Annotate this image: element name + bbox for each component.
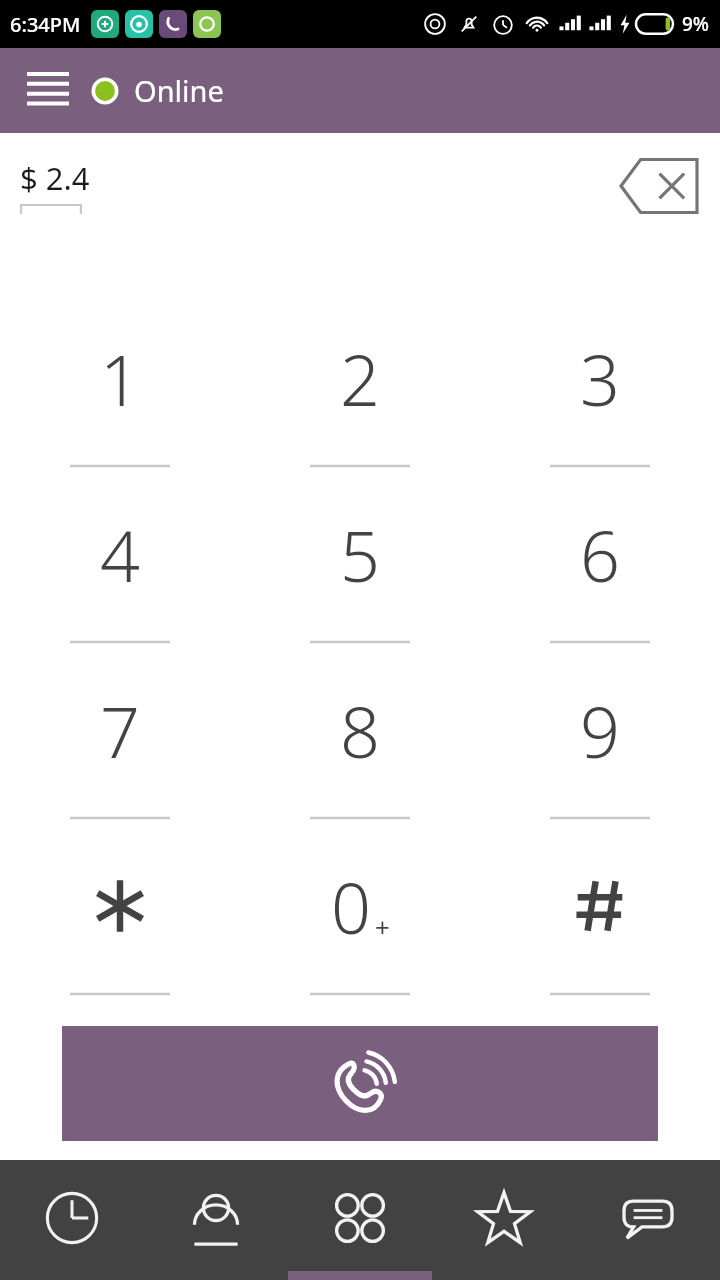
button[interactable]: Contacts	[144, 1160, 288, 1280]
button[interactable]: 5	[240, 476, 480, 652]
staticText: +	[375, 909, 390, 944]
staticText: 4	[100, 507, 140, 602]
button[interactable]: Call	[62, 1026, 658, 1141]
button[interactable]: $ 2.4	[20, 157, 90, 214]
button[interactable]: 3	[480, 300, 720, 476]
button[interactable]: Online	[86, 63, 228, 118]
button[interactable]: 8	[240, 652, 480, 828]
staticText: 1	[100, 331, 140, 426]
staticText: 9%	[682, 11, 710, 37]
staticText: 3	[580, 331, 620, 426]
button[interactable]: Keypad	[288, 1160, 432, 1280]
button[interactable]: Backspace	[614, 151, 704, 221]
staticText: 6:34PM	[10, 11, 81, 38]
staticText: 0	[331, 859, 371, 954]
staticText: 2	[340, 331, 380, 426]
button[interactable]: 0	[240, 828, 480, 1004]
button[interactable]: Messages	[576, 1160, 720, 1280]
button[interactable]: 1	[0, 300, 240, 476]
button[interactable]: 2	[240, 300, 480, 476]
button[interactable]: 4	[0, 476, 240, 652]
staticText: 9	[580, 683, 620, 778]
button[interactable]: 6	[480, 476, 720, 652]
staticText: 7	[100, 683, 140, 778]
button[interactable]: 7	[0, 652, 240, 828]
staticText: Online	[134, 71, 224, 110]
staticText: 8	[340, 683, 380, 778]
button[interactable]: Favorites	[432, 1160, 576, 1280]
button[interactable]: 9	[480, 652, 720, 828]
button[interactable]	[480, 828, 720, 1004]
button[interactable]: Recent calls	[0, 1160, 144, 1280]
staticText: 6	[580, 507, 620, 602]
button[interactable]: Open navigation menu	[18, 61, 78, 121]
staticText: 5	[340, 507, 380, 602]
button[interactable]	[0, 828, 240, 1004]
staticText: $ 2.4	[20, 157, 90, 199]
